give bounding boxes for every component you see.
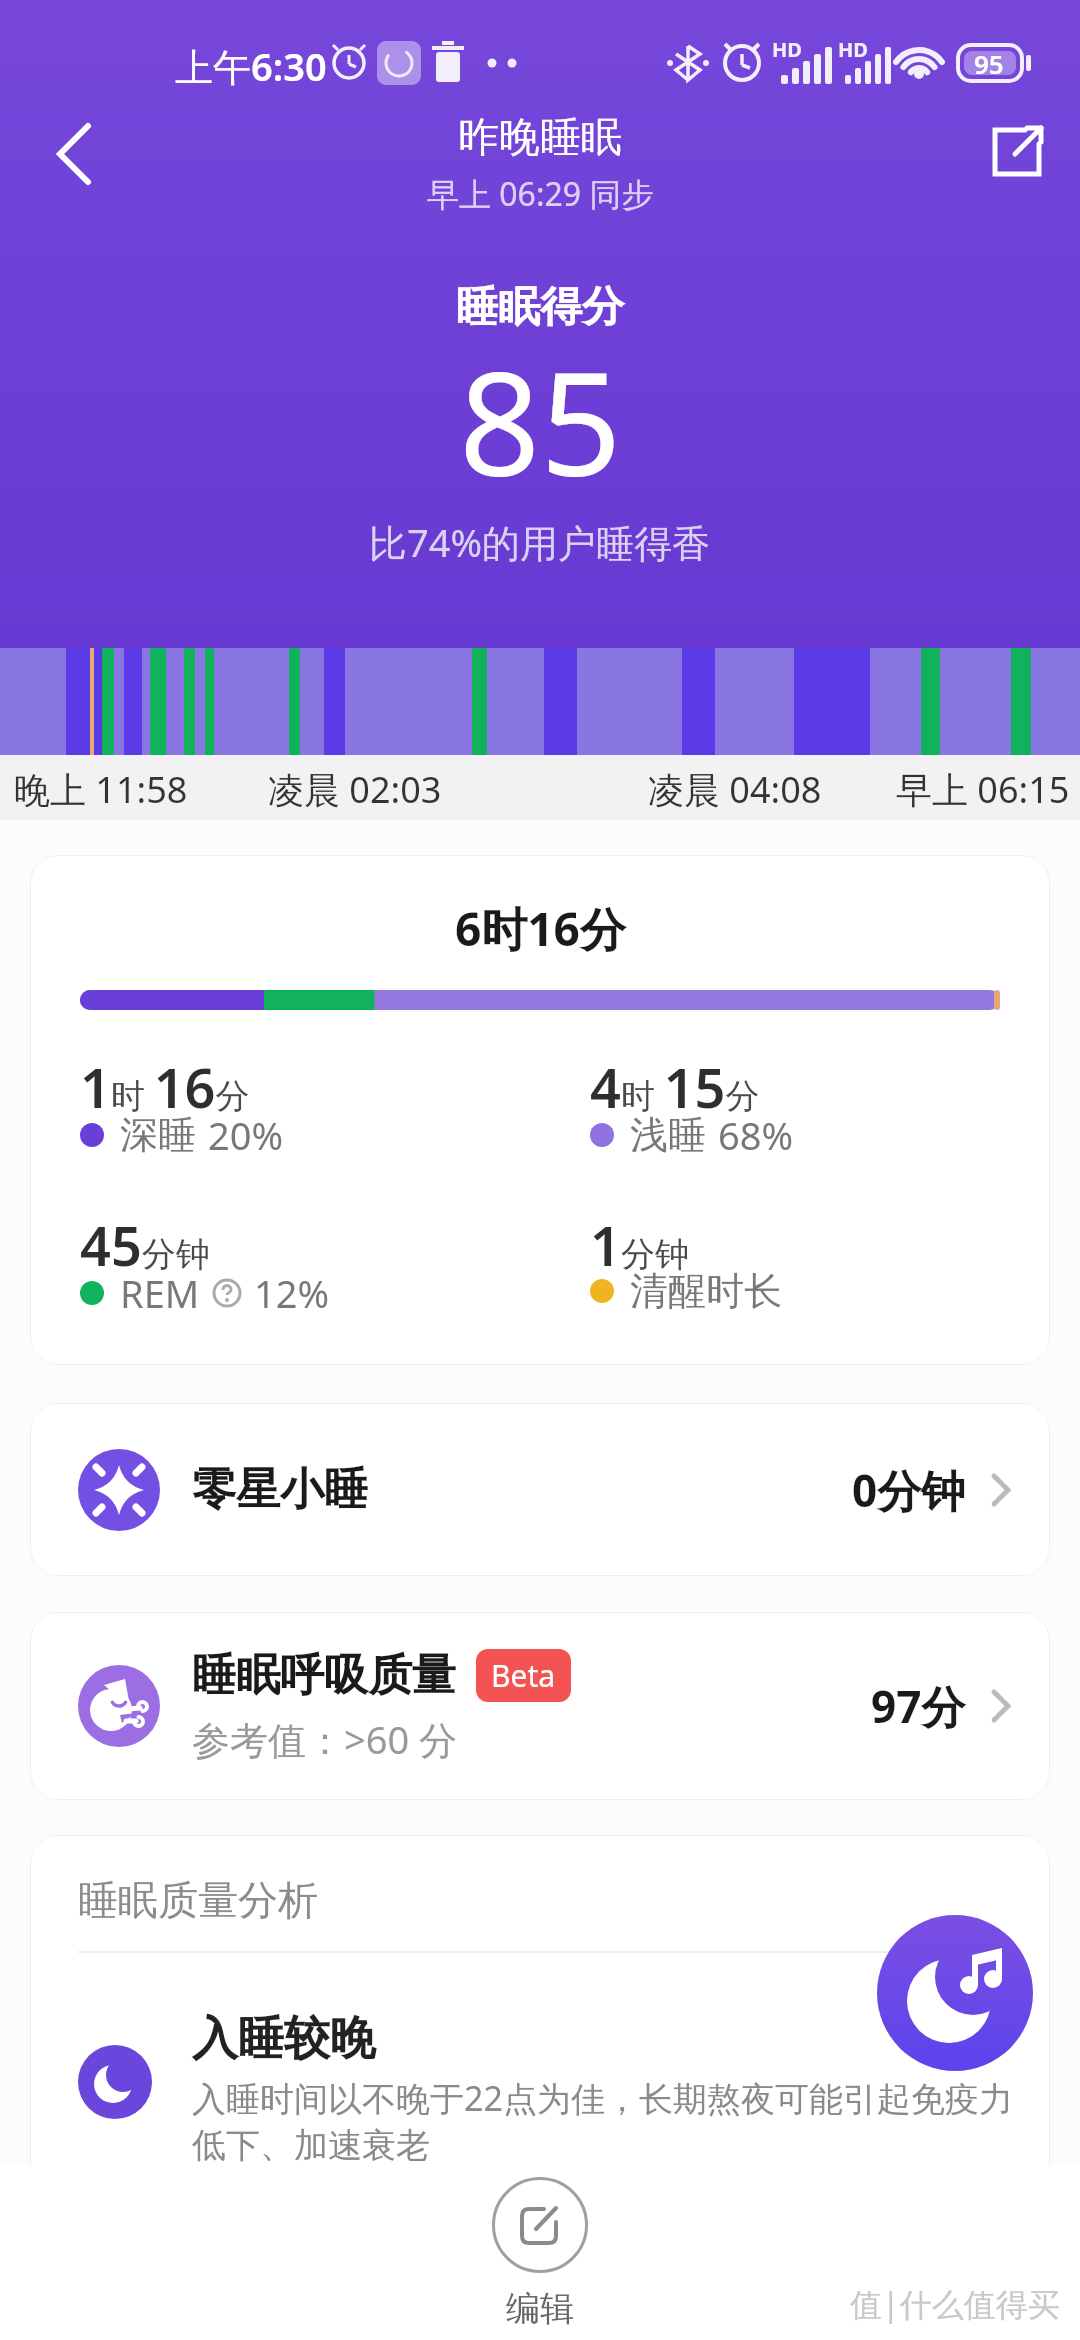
staticText: REM [120, 1267, 200, 1319]
staticText: HD [772, 36, 802, 63]
staticText: 参考值：>60 分 [192, 1713, 458, 1765]
staticText: 比74%的用户睡得香 [369, 516, 711, 568]
staticText: 1分钟 [590, 1208, 689, 1282]
staticText: 编辑 [506, 2287, 574, 2330]
staticText: 68% [718, 1109, 794, 1161]
staticText: 95 [974, 46, 1004, 81]
staticText: HD [838, 36, 868, 63]
staticText: 昨晚睡眠 [458, 112, 622, 164]
staticText: 凌晨 02:03 [268, 765, 442, 814]
staticText: 入睡较晚 [192, 2010, 376, 2068]
staticText: 6时16分 [455, 897, 626, 960]
staticText: 睡眠得分 [456, 281, 624, 334]
button[interactable]: 编辑 [492, 2165, 588, 2330]
staticText: 0分钟 [852, 1460, 966, 1520]
staticText: 零星小睡 [192, 1462, 368, 1517]
staticText: 深睡 [120, 1111, 196, 1159]
staticText: 浅睡 [630, 1111, 706, 1159]
staticText: 97分 [871, 1676, 966, 1736]
staticText: 1时 16分 [80, 1050, 250, 1124]
staticText: Beta [491, 1655, 556, 1696]
staticText: 入睡时间以不晚于22点为佳，长期熬夜可能引起免疫力 低下、加速衰老 [192, 2075, 1013, 2167]
staticText: 上午6:30 [175, 40, 327, 92]
staticText: 睡眠呼吸质量 [192, 1648, 456, 1703]
staticText: 清醒时长 [630, 1267, 782, 1315]
button[interactable] [877, 1915, 1033, 2071]
staticText: 睡眠质量分析 [78, 1875, 318, 1925]
button[interactable] [985, 122, 1049, 186]
staticText: 晚上 11:58 [14, 765, 188, 814]
staticText: 凌晨 04:08 [648, 765, 822, 814]
staticText: 20% [208, 1109, 284, 1161]
staticText: 早上 06:15 [896, 765, 1070, 814]
button[interactable]: 零星小睡 [30, 1403, 1050, 1576]
staticText: 45分钟 [80, 1208, 210, 1282]
button[interactable] [40, 118, 110, 188]
button[interactable]: 睡眠呼吸质量 [30, 1612, 1050, 1800]
staticText: 值|什么值得买 [850, 2282, 1060, 2326]
staticText: 85 [459, 324, 622, 517]
staticText: 4时 15分 [590, 1050, 760, 1124]
staticText: 早上 06:29 同步 [427, 172, 654, 216]
staticText: 12% [254, 1267, 330, 1319]
